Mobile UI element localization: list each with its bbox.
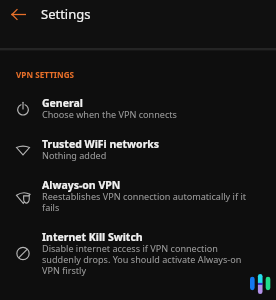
- staticText: Trusted WiFi networks: [42, 137, 160, 151]
- staticText: Always-on VPN: [42, 178, 121, 192]
- button[interactable]: General: [0, 88, 276, 129]
- button[interactable]: Trusted WiFi networks: [0, 129, 276, 170]
- button[interactable]: Internet Kill Switch: [0, 222, 276, 285]
- staticText: VPN SETTINGS: [16, 69, 75, 80]
- staticText: Internet Kill Switch: [42, 230, 143, 244]
- staticText: General: [42, 96, 83, 110]
- staticText: Disable internet access if VPN connectio…: [42, 244, 250, 277]
- button[interactable]: App logo: [250, 274, 270, 294]
- button[interactable]: Always-on VPN: [0, 170, 276, 222]
- staticText: Choose when the VPN connects: [42, 110, 177, 121]
- button[interactable]: Back: [4, 0, 33, 28]
- staticText: Reestablishes VPN connection automatical…: [42, 192, 250, 214]
- staticText: Settings: [41, 5, 91, 23]
- staticText: Nothing added: [42, 151, 107, 162]
